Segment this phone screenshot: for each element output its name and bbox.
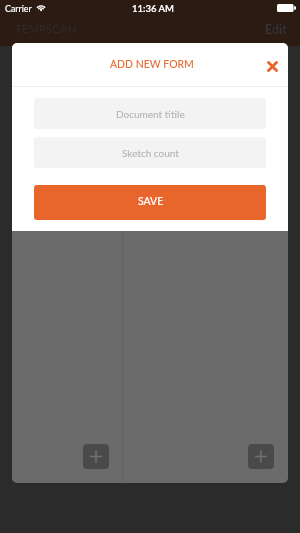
- staticText: 11:36 AM: [132, 3, 174, 14]
- button[interactable]: Add item: [83, 444, 109, 469]
- button[interactable]: Add item: [248, 444, 274, 469]
- staticText: Document titile: [116, 108, 185, 120]
- button[interactable]: Edit: [256, 19, 300, 46]
- button[interactable]: Sketch count: [34, 137, 266, 168]
- staticText: Edit: [265, 22, 287, 37]
- button[interactable]: Document titile: [34, 98, 266, 129]
- staticText: TEMPSCAN: [15, 22, 77, 36]
- staticText: Sketch count: [122, 147, 179, 159]
- button[interactable]: SAVE: [34, 185, 266, 220]
- staticText: SAVE: [138, 195, 164, 208]
- staticText: ADD NEW FORM: [110, 58, 194, 71]
- button[interactable]: Close dialog: [252, 47, 288, 83]
- staticText: Carrier: [5, 3, 32, 14]
